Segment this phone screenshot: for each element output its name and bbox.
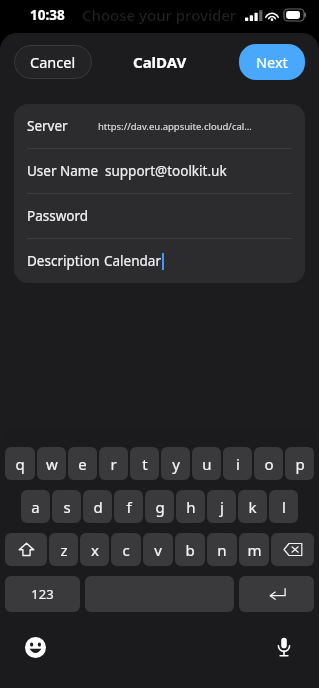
- button[interactable]: b: [175, 533, 205, 566]
- staticText: a: [31, 497, 40, 517]
- button[interactable]: Voice input: [271, 634, 297, 660]
- staticText: v: [154, 540, 162, 560]
- button[interactable]: Emoji: [22, 634, 48, 660]
- staticText: Next: [256, 52, 288, 72]
- button[interactable]: e: [68, 447, 97, 480]
- button[interactable]: s: [52, 490, 81, 523]
- button[interactable]: f: [114, 490, 143, 523]
- button[interactable]: i: [223, 447, 252, 480]
- button[interactable]: m: [239, 533, 269, 566]
- staticText: r: [110, 454, 117, 474]
- staticText: y: [172, 454, 180, 474]
- button[interactable]: z: [49, 533, 78, 566]
- staticText: Description: [27, 252, 100, 270]
- staticText: j: [220, 497, 224, 517]
- staticText: i: [236, 454, 240, 474]
- button[interactable]: o: [254, 447, 283, 480]
- staticText: Server: [27, 117, 68, 135]
- staticText: n: [217, 540, 227, 560]
- button[interactable]: q: [5, 447, 35, 480]
- staticText: https://dav.eu.appsuite.cloud/cal…: [98, 120, 252, 133]
- button[interactable]: g: [145, 490, 174, 523]
- staticText: Choose your provider: [82, 5, 237, 25]
- staticText: q: [15, 454, 25, 474]
- staticText: c: [122, 540, 130, 560]
- button[interactable]: h: [176, 490, 205, 523]
- staticText: k: [248, 497, 257, 517]
- button[interactable]: k: [238, 490, 267, 523]
- button[interactable]: u: [192, 447, 221, 480]
- staticText: Calendar: [104, 252, 161, 270]
- staticText: support@toolkit.uk: [105, 162, 227, 180]
- button[interactable]: c: [111, 533, 141, 566]
- button[interactable]: j: [207, 490, 236, 523]
- button[interactable]: r: [99, 447, 128, 480]
- staticText: g: [155, 497, 165, 517]
- staticText: e: [78, 454, 87, 474]
- staticText: m: [247, 540, 262, 560]
- button[interactable]: n: [207, 533, 237, 566]
- button[interactable]: Server: [14, 104, 305, 148]
- button[interactable]: Backspace: [271, 533, 314, 566]
- button[interactable]: x: [80, 533, 109, 566]
- staticText: o: [264, 454, 274, 474]
- staticText: u: [202, 454, 212, 474]
- staticText: z: [60, 540, 68, 560]
- button[interactable]: w: [37, 447, 66, 480]
- button[interactable]: a: [21, 490, 50, 523]
- staticText: 10:38: [30, 6, 65, 24]
- staticText: Password: [27, 207, 89, 225]
- button[interactable]: y: [161, 447, 190, 480]
- staticText: Cancel: [30, 52, 76, 72]
- button[interactable]: Password: [14, 194, 305, 238]
- button[interactable]: t: [130, 447, 159, 480]
- staticText: d: [93, 497, 103, 517]
- staticText: 123: [31, 585, 54, 603]
- staticText: h: [186, 497, 196, 517]
- staticText: x: [91, 540, 99, 560]
- button[interactable]: Shift: [5, 533, 47, 566]
- staticText: p: [295, 454, 305, 474]
- button[interactable]: Enter: [239, 576, 314, 612]
- button[interactable]: User Name: [14, 149, 305, 193]
- button[interactable]: d: [83, 490, 112, 523]
- button[interactable]: v: [143, 533, 173, 566]
- button[interactable]: l: [269, 490, 298, 523]
- button[interactable]: Next: [239, 44, 305, 80]
- staticText: l: [282, 497, 286, 517]
- button[interactable]: p: [285, 447, 314, 480]
- staticText: s: [63, 497, 71, 517]
- staticText: w: [46, 454, 58, 474]
- button[interactable]: 123: [5, 576, 80, 612]
- button[interactable]: Description: [14, 239, 305, 283]
- staticText: b: [185, 540, 195, 560]
- button[interactable]: Cancel: [14, 45, 92, 79]
- staticText: User Name: [27, 162, 99, 180]
- staticText: f: [126, 497, 132, 517]
- staticText: t: [142, 454, 148, 474]
- staticText: CalDAV: [133, 52, 187, 72]
